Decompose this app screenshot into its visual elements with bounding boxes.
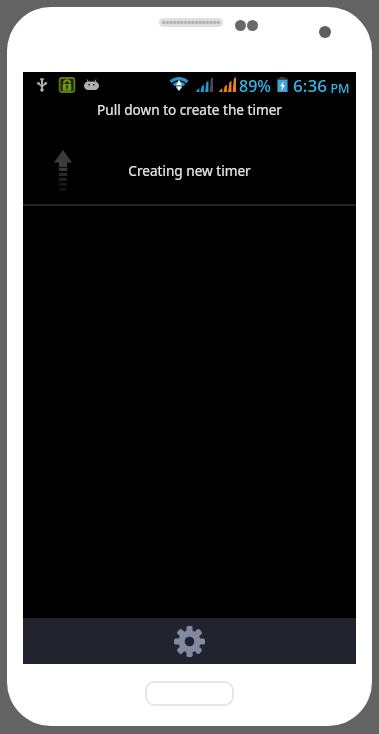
staticText: 89% bbox=[239, 75, 271, 97]
button[interactable]: Settings bbox=[23, 618, 356, 664]
button[interactable]: Creating new timer bbox=[23, 136, 356, 205]
staticText: Creating new timer bbox=[128, 161, 251, 180]
staticText: PM bbox=[330, 80, 350, 97]
staticText: Pull down to create the timer bbox=[97, 100, 282, 119]
staticText: 6:36 bbox=[293, 74, 327, 97]
